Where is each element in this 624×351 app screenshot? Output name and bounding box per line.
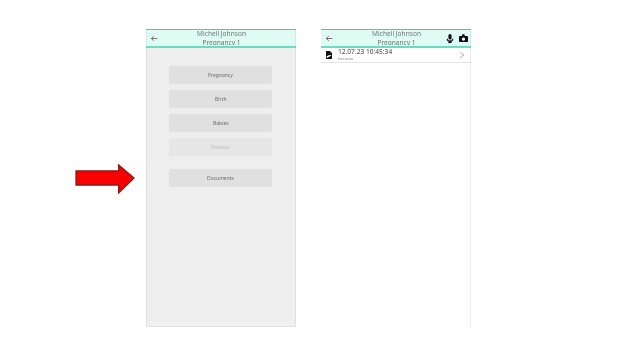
staticText: Michell Johnson bbox=[372, 29, 421, 38]
staticText: Babies bbox=[213, 120, 229, 127]
staticText: Pregnancy 1 bbox=[202, 38, 241, 45]
button[interactable]: Take photo bbox=[456, 30, 471, 46]
button[interactable]: Back bbox=[146, 30, 161, 46]
button[interactable]: Back bbox=[321, 30, 336, 46]
staticText: Michell Johnson bbox=[197, 29, 246, 38]
staticText: Birth bbox=[215, 96, 227, 103]
button[interactable]: Babies bbox=[169, 114, 272, 132]
staticText: Pregnancy bbox=[208, 72, 233, 79]
button[interactable]: Birth bbox=[169, 90, 272, 108]
staticText: Pregnancy 1 bbox=[377, 38, 416, 45]
button[interactable]: Documents bbox=[169, 169, 272, 187]
button[interactable]: Record audio bbox=[443, 30, 456, 46]
staticText: 12.07.23 10:45:34 bbox=[338, 47, 393, 56]
staticText: Documents bbox=[207, 175, 234, 182]
button[interactable]: 12.07.23 10:45:34 bbox=[321, 48, 471, 63]
staticText: Release bbox=[211, 144, 230, 151]
staticText: image bbox=[338, 55, 354, 60]
button[interactable]: Pregnancy bbox=[169, 66, 272, 84]
